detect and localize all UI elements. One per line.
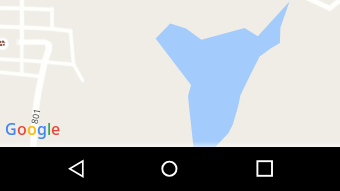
staticText: g (37, 118, 47, 140)
button[interactable]: Home (147, 147, 191, 191)
button[interactable]: Back (54, 147, 98, 191)
staticText: o (27, 118, 37, 140)
button[interactable]: Recents (242, 147, 286, 191)
staticText: e (51, 118, 60, 140)
staticText: l (47, 118, 51, 140)
staticText: G (5, 118, 17, 140)
staticText: o (17, 118, 27, 140)
